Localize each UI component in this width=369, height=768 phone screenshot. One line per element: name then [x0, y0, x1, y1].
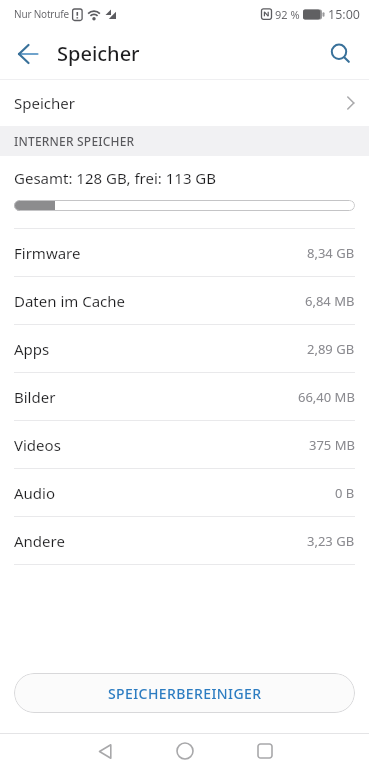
- button[interactable]: Andere: [0, 517, 369, 564]
- button[interactable]: [88, 734, 122, 768]
- button[interactable]: SPEICHERBEREINIGER: [14, 673, 355, 713]
- staticText: 3,23 GB: [307, 532, 355, 550]
- staticText: INTERNER SPEICHER: [14, 133, 135, 149]
- staticText: Bilder: [14, 387, 56, 407]
- staticText: 375 MB: [309, 436, 355, 454]
- button[interactable]: [248, 734, 282, 768]
- button[interactable]: Firmware: [0, 229, 369, 276]
- staticText: Videos: [14, 435, 61, 455]
- staticText: Daten im Cache: [14, 291, 126, 311]
- button[interactable]: Audio: [0, 469, 369, 516]
- staticText: Nur Notrufe: [14, 7, 69, 21]
- staticText: 66,40 MB: [298, 388, 355, 406]
- staticText: 6,84 MB: [305, 292, 355, 310]
- staticText: Firmware: [14, 243, 81, 263]
- staticText: 2,89 GB: [307, 340, 355, 358]
- button[interactable]: Videos: [0, 421, 369, 468]
- button[interactable]: Speicher: [0, 80, 369, 126]
- staticText: Speicher: [57, 40, 140, 67]
- button[interactable]: [12, 38, 44, 70]
- staticText: Andere: [14, 531, 65, 551]
- staticText: Audio: [14, 483, 56, 503]
- button[interactable]: Apps: [0, 325, 369, 372]
- staticText: 15:00: [328, 6, 360, 23]
- button[interactable]: [325, 38, 357, 70]
- staticText: 8,34 GB: [307, 244, 355, 262]
- staticText: Speicher: [14, 93, 75, 113]
- button[interactable]: [168, 734, 202, 768]
- staticText: 92 %: [275, 7, 300, 22]
- button[interactable]: Bilder: [0, 373, 369, 420]
- staticText: 0 B: [335, 484, 355, 502]
- staticText: Gesamt: 128 GB, frei: 113 GB: [14, 168, 217, 188]
- staticText: SPEICHERBEREINIGER: [108, 684, 262, 703]
- staticText: Apps: [14, 339, 50, 359]
- button[interactable]: Daten im Cache: [0, 277, 369, 324]
